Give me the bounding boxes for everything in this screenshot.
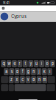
staticText: r bbox=[19, 61, 21, 66]
button[interactable]: a bbox=[4, 68, 9, 75]
button[interactable]: t bbox=[23, 60, 28, 67]
button[interactable]: Space bbox=[14, 84, 46, 91]
staticText: m bbox=[43, 77, 47, 82]
button[interactable]: p bbox=[50, 60, 55, 67]
button[interactable]: Key bbox=[1, 76, 8, 83]
staticText: y bbox=[30, 61, 32, 66]
staticText: j bbox=[38, 69, 39, 74]
staticText: w bbox=[7, 61, 10, 66]
button[interactable]: Cyprus bbox=[0, 11, 56, 22]
button[interactable]: q bbox=[1, 60, 6, 67]
button[interactable]: n bbox=[37, 76, 42, 83]
staticText: x bbox=[16, 77, 18, 82]
staticText: k bbox=[43, 69, 45, 74]
staticText: 9:41 bbox=[3, 1, 9, 5]
button[interactable]: Key bbox=[1, 84, 8, 91]
staticText: Cyprus bbox=[11, 14, 26, 19]
button[interactable]: u bbox=[34, 60, 39, 67]
button[interactable]: l bbox=[47, 68, 52, 75]
button[interactable]: z bbox=[9, 76, 14, 83]
staticText: c bbox=[21, 77, 23, 82]
button[interactable]: s bbox=[9, 68, 14, 75]
button[interactable]: b bbox=[31, 76, 36, 83]
staticText: z bbox=[10, 77, 12, 82]
button[interactable]: m bbox=[42, 76, 47, 83]
button[interactable]: Key bbox=[9, 84, 14, 91]
button[interactable]: y bbox=[28, 60, 33, 67]
staticText: g bbox=[27, 69, 29, 74]
staticText: u bbox=[35, 61, 37, 66]
staticText: o bbox=[46, 61, 48, 66]
button[interactable]: d bbox=[15, 68, 19, 75]
staticText: t bbox=[25, 61, 26, 66]
staticText: h bbox=[32, 69, 34, 74]
button[interactable] bbox=[0, 5, 56, 11]
staticText: d bbox=[16, 69, 18, 74]
button[interactable]: v bbox=[25, 76, 30, 83]
button[interactable]: o bbox=[45, 60, 49, 67]
button[interactable]: x bbox=[14, 76, 19, 83]
staticText: e bbox=[13, 61, 15, 66]
button[interactable]: Key bbox=[46, 84, 55, 91]
button[interactable]: j bbox=[36, 68, 41, 75]
staticText: i bbox=[41, 61, 42, 66]
button[interactable]: g bbox=[26, 68, 30, 75]
staticText: n bbox=[38, 77, 40, 82]
staticText: q bbox=[2, 61, 4, 66]
button[interactable]: c bbox=[20, 76, 25, 83]
button[interactable]: f bbox=[20, 68, 25, 75]
staticText: f bbox=[22, 69, 23, 74]
staticText: p bbox=[51, 61, 53, 66]
staticText: s bbox=[11, 69, 13, 74]
staticText: v bbox=[27, 77, 29, 82]
button[interactable]: h bbox=[31, 68, 36, 75]
staticText: l bbox=[49, 69, 50, 74]
button[interactable]: w bbox=[6, 60, 11, 67]
button[interactable]: Key bbox=[48, 76, 55, 83]
button[interactable]: r bbox=[17, 60, 22, 67]
staticText: b bbox=[33, 77, 35, 82]
button[interactable]: i bbox=[39, 60, 44, 67]
button[interactable]: e bbox=[12, 60, 17, 67]
staticText: a bbox=[5, 69, 7, 74]
button[interactable]: k bbox=[42, 68, 47, 75]
